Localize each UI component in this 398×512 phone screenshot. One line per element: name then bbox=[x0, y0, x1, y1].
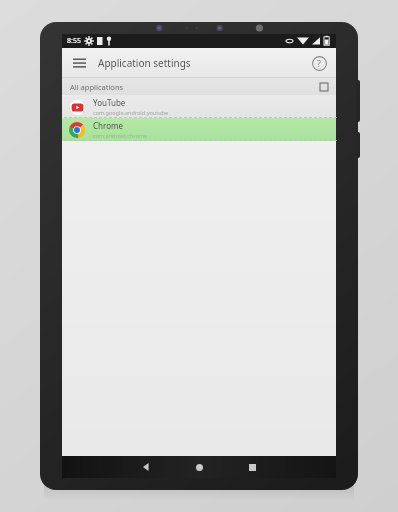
staticText: com.google.android.youtube bbox=[93, 109, 169, 116]
staticText: All applications bbox=[70, 82, 124, 92]
button[interactable]: Select all applications bbox=[318, 81, 329, 92]
staticText: Application settings bbox=[98, 56, 191, 70]
button[interactable]: Help bbox=[308, 52, 330, 74]
button[interactable]: Back bbox=[135, 456, 157, 478]
button[interactable]: Recent apps bbox=[241, 456, 263, 478]
staticText: YouTube bbox=[93, 97, 126, 108]
button[interactable]: Open navigation menu bbox=[68, 52, 90, 74]
staticText: com.android.chrome bbox=[93, 132, 147, 139]
staticText: ? bbox=[317, 57, 321, 69]
button[interactable]: Home bbox=[188, 456, 210, 478]
staticText: 8:55 bbox=[67, 36, 81, 46]
staticText: Chrome bbox=[93, 120, 123, 131]
button[interactable]: Chrome bbox=[62, 118, 336, 141]
button[interactable]: YouTube bbox=[62, 95, 336, 118]
button[interactable]: All applications bbox=[62, 78, 336, 95]
